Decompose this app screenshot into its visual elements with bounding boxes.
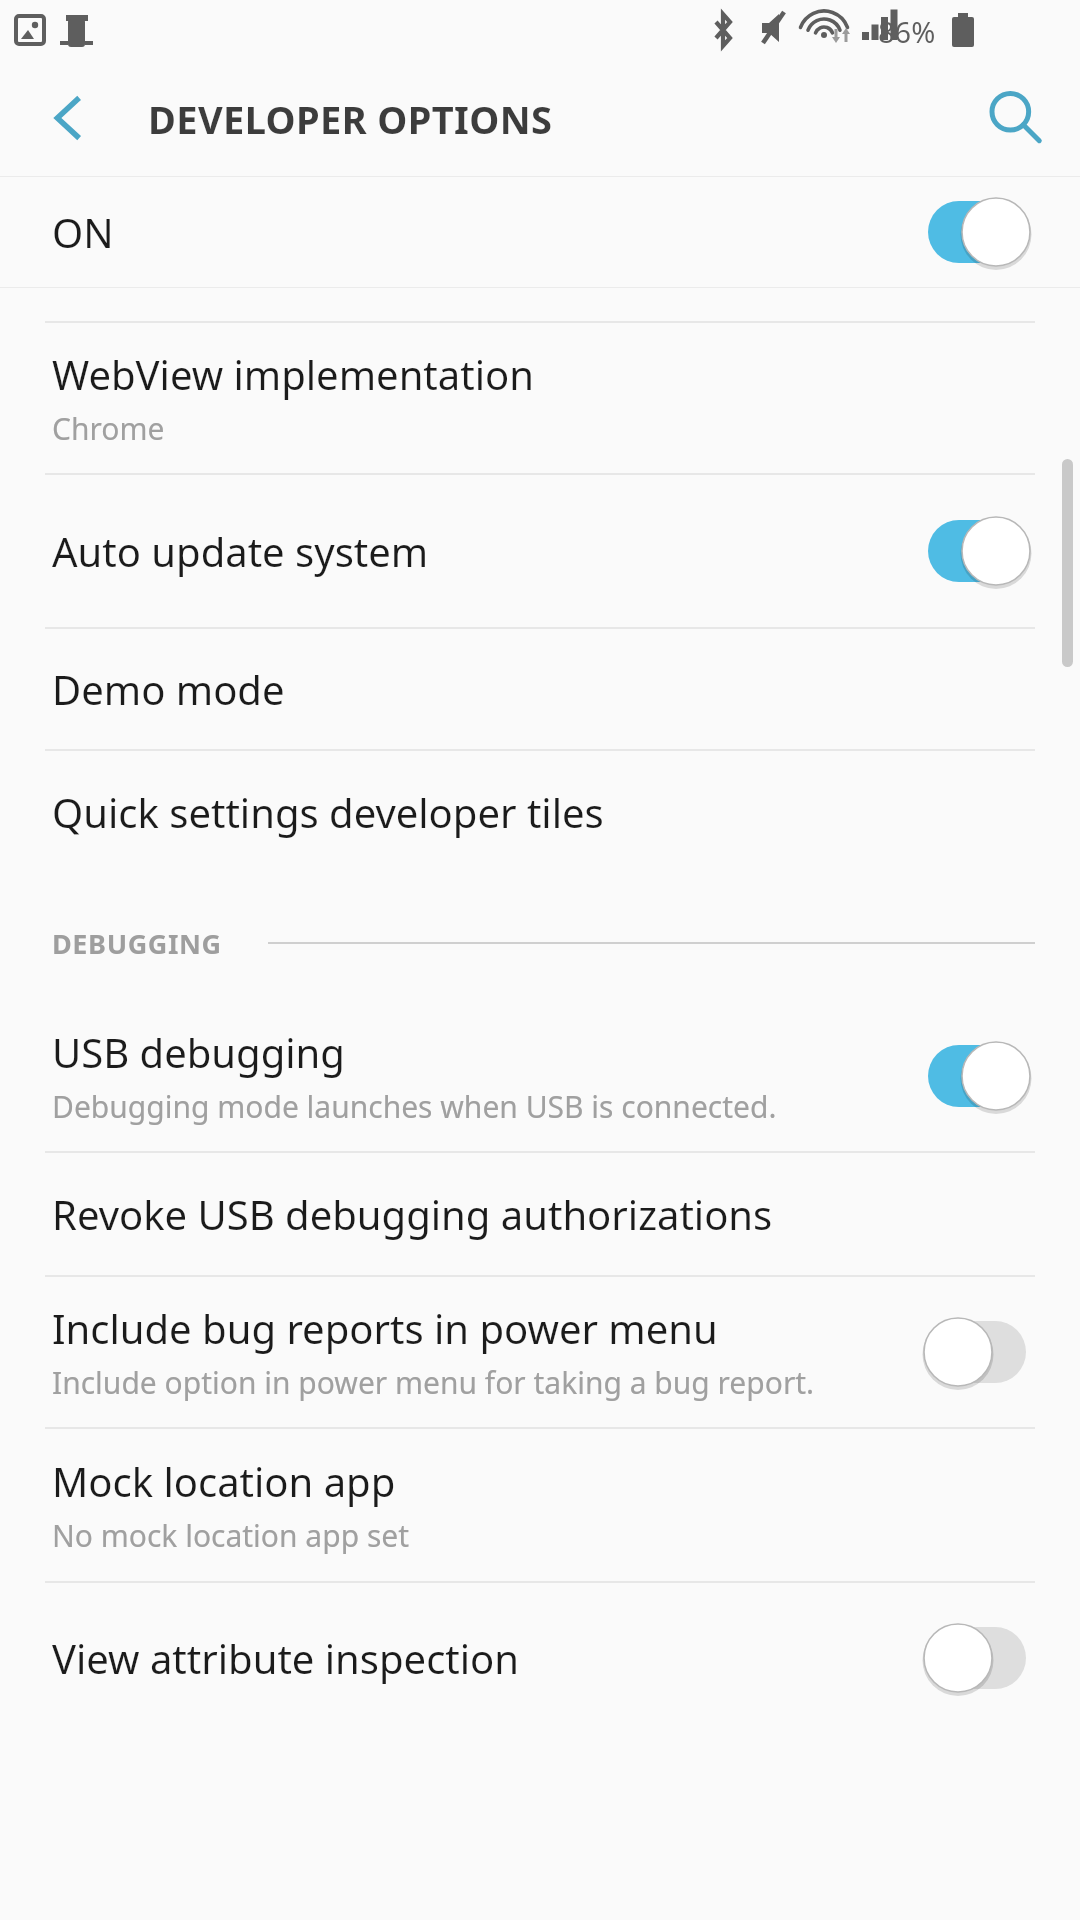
staticText: DEBUGGING [52, 925, 222, 962]
staticText: USB debugging [52, 1025, 345, 1079]
button[interactable]: ON [0, 177, 1080, 287]
staticText: Revoke USB debugging authorizations [52, 1187, 773, 1241]
staticText: Auto update system [52, 524, 429, 578]
button[interactable] [922, 1623, 1044, 1693]
button[interactable]: Demo mode [0, 629, 1080, 749]
button[interactable]: Quick settings developer tiles [0, 751, 1080, 873]
staticText: 86% [878, 12, 936, 51]
button[interactable] [922, 197, 1044, 267]
staticText: Quick settings developer tiles [52, 785, 604, 839]
staticText: DEVELOPER OPTIONS [148, 93, 553, 145]
staticText: No mock location app set [52, 1515, 409, 1556]
button[interactable] [922, 1317, 1044, 1387]
button[interactable]: Auto update system [0, 475, 1080, 627]
staticText: WebView implementation [52, 347, 534, 401]
staticText: View attribute inspection [52, 1631, 520, 1685]
button[interactable]: View attribute inspection [0, 1583, 1080, 1733]
button[interactable] [922, 1041, 1044, 1111]
button[interactable]: Include bug reports in power menu [0, 1277, 1080, 1427]
staticText: Demo mode [52, 662, 285, 716]
button[interactable]: WebView implementation [0, 323, 1080, 473]
staticText: Mock location app [52, 1454, 396, 1508]
button[interactable]: Back [30, 80, 106, 156]
staticText: Include option in power menu for taking … [52, 1362, 815, 1403]
staticText: Include bug reports in power menu [52, 1301, 718, 1355]
staticText: Chrome [52, 408, 165, 449]
button[interactable]: Revoke USB debugging authorizations [0, 1153, 1080, 1275]
button[interactable]: Search [976, 79, 1054, 157]
button[interactable]: USB debugging [0, 1001, 1080, 1151]
button[interactable] [922, 516, 1044, 586]
staticText: Debugging mode launches when USB is conn… [52, 1086, 777, 1127]
button[interactable]: Mock location app [0, 1429, 1080, 1581]
staticText: ON [52, 205, 114, 259]
